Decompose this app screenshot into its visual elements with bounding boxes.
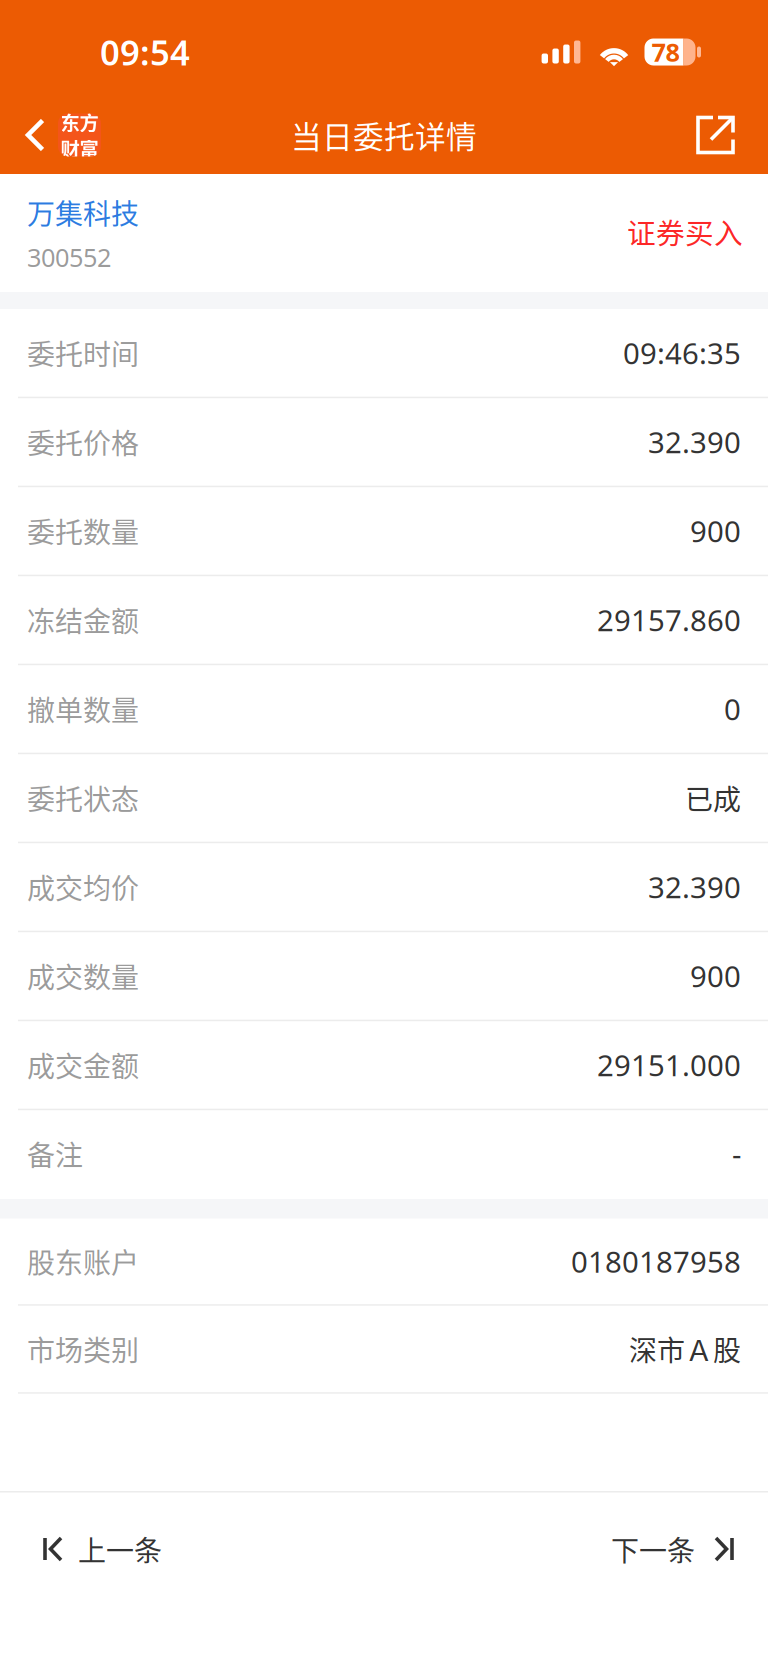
staticText: 东方 <box>60 108 98 136</box>
staticText: 深市Ａ股 <box>629 1328 741 1369</box>
staticText: 900 <box>690 511 741 550</box>
staticText: 当日委托详情 <box>291 113 477 157</box>
staticText: 900 <box>690 956 741 995</box>
staticText: 29157.860 <box>597 600 741 639</box>
staticText: 0180187958 <box>571 1242 741 1281</box>
staticText: 0 <box>724 689 741 728</box>
staticText: 09:54 <box>100 29 190 75</box>
staticText: 财富 <box>60 134 98 162</box>
button[interactable]: 下一条 <box>581 1492 768 1605</box>
staticText: 32.390 <box>648 422 741 461</box>
staticText: - <box>732 1134 741 1173</box>
staticText: 委托数量 <box>27 510 139 551</box>
staticText: 29151.000 <box>597 1045 741 1084</box>
staticText: 32.390 <box>648 867 741 906</box>
staticText: 成交数量 <box>27 955 139 996</box>
staticText: 万集科技 <box>27 192 139 232</box>
staticText: 已成 <box>685 777 741 818</box>
staticText: 股东账户 <box>27 1241 139 1281</box>
staticText: 撤单数量 <box>27 688 139 729</box>
staticText: 78 <box>651 35 679 69</box>
staticText: 上一条 <box>78 1529 162 1569</box>
staticText: 成交金额 <box>27 1044 139 1085</box>
staticText: 下一条 <box>611 1529 695 1569</box>
staticText: 市场类别 <box>27 1328 139 1369</box>
staticText: 证券买入 <box>627 211 743 252</box>
button[interactable]: 上一条 <box>0 1492 192 1605</box>
staticText: 冻结金额 <box>27 599 139 640</box>
button[interactable]: 万集科技 <box>27 192 139 232</box>
staticText: 300552 <box>27 240 111 274</box>
button[interactable]: 返回 东方财富 <box>0 96 117 174</box>
staticText: 成交均价 <box>27 866 139 907</box>
staticText: 委托价格 <box>27 421 139 462</box>
staticText: 委托状态 <box>27 777 139 818</box>
button[interactable]: 分享 <box>670 96 768 174</box>
staticText: 委托时间 <box>27 332 139 373</box>
staticText: 备注 <box>27 1133 83 1174</box>
staticText: 09:46:35 <box>623 333 741 372</box>
